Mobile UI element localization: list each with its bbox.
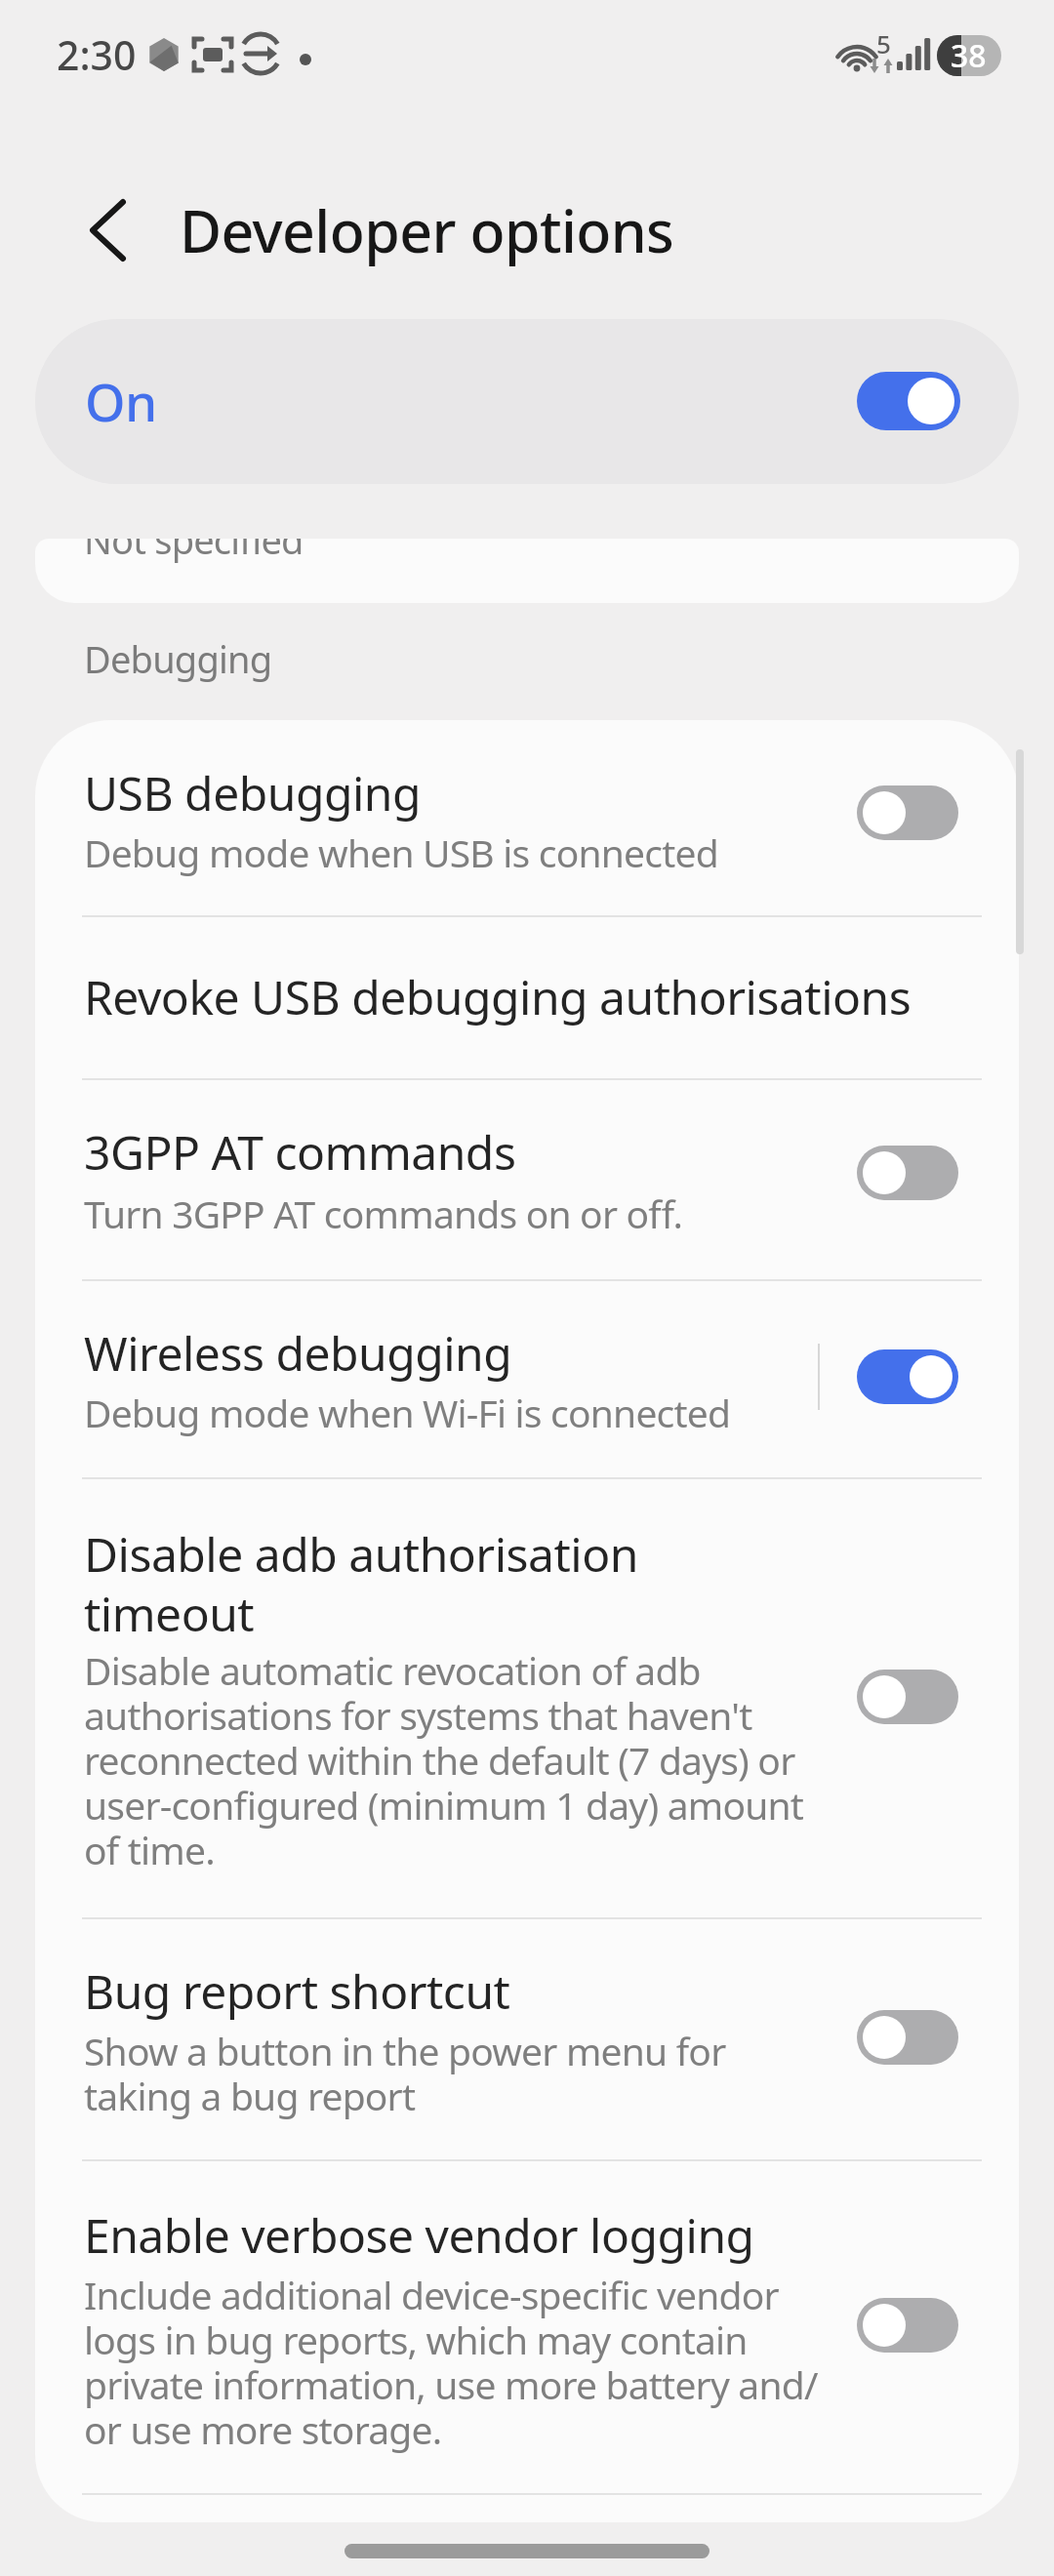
- staticText: Disable adb authorisation: [84, 1522, 638, 1586]
- staticText: or use more storage.: [84, 2403, 442, 2455]
- staticText: user-configured (minimum 1 day) amount: [84, 1779, 804, 1831]
- staticText: timeout: [84, 1582, 255, 1645]
- button[interactable]: [857, 1670, 958, 1724]
- staticText: Enable verbose vendor logging: [84, 2203, 754, 2267]
- button[interactable]: [857, 785, 958, 840]
- staticText: Turn 3GPP AT commands on or off.: [84, 1187, 683, 1239]
- staticText: authorisations for systems that haven't: [84, 1689, 752, 1741]
- button[interactable]: [35, 1479, 1019, 1916]
- staticText: Developer options: [180, 191, 674, 269]
- staticText: Include additional device-specific vendo…: [84, 2269, 779, 2320]
- staticText: 2:30: [57, 27, 137, 82]
- button[interactable]: On: [35, 319, 1019, 484]
- button[interactable]: [35, 722, 1019, 915]
- button[interactable]: [35, 1919, 1019, 2158]
- button[interactable]: [857, 1349, 958, 1404]
- staticText: USB debugging: [84, 761, 422, 825]
- staticText: Debug mode when Wi-Fi is connected: [84, 1387, 731, 1438]
- button[interactable]: [59, 176, 146, 283]
- staticText: Show a button in the power menu for: [84, 2025, 726, 2076]
- staticText: 3GPP AT commands: [84, 1120, 516, 1184]
- staticText: Wireless debugging: [84, 1321, 512, 1385]
- staticText: reconnected within the default (7 days) …: [84, 1734, 795, 1786]
- staticText: Bug report shortcut: [84, 1959, 510, 2023]
- button[interactable]: [857, 1146, 958, 1200]
- button[interactable]: [857, 2010, 958, 2065]
- button[interactable]: [35, 1080, 1019, 1278]
- button[interactable]: [857, 372, 960, 430]
- staticText: Disable automatic revocation of adb: [84, 1644, 701, 1696]
- staticText: Revoke USB debugging authorisations: [84, 965, 912, 1028]
- staticText: of time.: [84, 1824, 215, 1875]
- button[interactable]: [35, 2161, 1019, 2493]
- staticText: Not specified: [84, 539, 304, 565]
- staticText: On: [85, 366, 157, 436]
- button[interactable]: [857, 2298, 958, 2353]
- staticText: private information, use more battery an…: [84, 2358, 818, 2410]
- staticText: 5: [876, 26, 891, 60]
- button[interactable]: [35, 1281, 1019, 1476]
- staticText: Debug mode when USB is connected: [84, 826, 718, 878]
- staticText: Debugging: [84, 633, 272, 684]
- staticText: taking a bug report: [84, 2070, 416, 2121]
- staticText: 38: [951, 34, 987, 77]
- button[interactable]: [35, 917, 1019, 1077]
- staticText: logs in bug reports, which may contain: [84, 2314, 748, 2365]
